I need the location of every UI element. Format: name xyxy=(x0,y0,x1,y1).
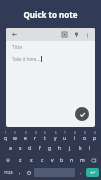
staticText: k xyxy=(79,145,82,152)
staticText: 3 xyxy=(25,131,27,135)
staticText: r xyxy=(34,135,37,142)
staticText: d xyxy=(28,145,32,152)
button[interactable]: 0 xyxy=(90,130,100,142)
button[interactable]: s xyxy=(15,142,25,154)
button[interactable]: g xyxy=(45,142,55,154)
button[interactable]: l xyxy=(85,142,95,154)
staticText: z xyxy=(19,157,22,164)
staticText: . xyxy=(80,169,82,176)
staticText: j xyxy=(69,145,71,152)
staticText: 7 xyxy=(64,131,66,135)
staticText: b xyxy=(60,157,64,164)
staticText: 9 xyxy=(84,131,86,135)
staticText: Quick to note xyxy=(23,9,78,20)
staticText: 8 xyxy=(74,131,76,135)
button[interactable]: 3 xyxy=(20,130,30,142)
button[interactable]: Emoji xyxy=(24,166,33,179)
button[interactable]: Comma xyxy=(16,166,24,179)
staticText: q xyxy=(4,135,8,142)
button[interactable]: Save xyxy=(60,30,69,39)
button[interactable]: More options xyxy=(83,31,91,39)
button[interactable]: d xyxy=(25,142,35,154)
staticText: y xyxy=(54,135,57,142)
button[interactable]: z xyxy=(15,154,26,166)
button[interactable]: 2 xyxy=(10,130,20,142)
staticText: ?123 xyxy=(4,170,13,175)
button[interactable]: 7 xyxy=(60,130,70,142)
staticText: Title xyxy=(12,44,22,51)
staticText: l xyxy=(89,145,91,152)
staticText: c xyxy=(41,157,44,164)
staticText: o xyxy=(83,135,87,142)
staticText: s xyxy=(19,145,22,152)
staticText: n xyxy=(70,157,74,164)
staticText: 5 xyxy=(44,131,46,135)
button[interactable]: a xyxy=(5,142,15,154)
staticText: h xyxy=(58,145,62,152)
button[interactable]: 4 xyxy=(30,130,40,142)
staticText: g xyxy=(48,145,52,152)
button[interactable]: k xyxy=(75,142,85,154)
staticText: 2 xyxy=(14,131,16,135)
staticText: i xyxy=(74,135,76,142)
staticText: 0 xyxy=(94,131,96,135)
button[interactable]: 1 xyxy=(1,130,10,142)
button[interactable]: 6 xyxy=(50,130,60,142)
staticText: Take it here... xyxy=(12,56,40,62)
staticText: u xyxy=(63,135,67,142)
button[interactable]: Pin xyxy=(72,30,81,39)
button[interactable]: 9 xyxy=(80,130,90,142)
staticText: 1 xyxy=(5,131,7,135)
staticText: f xyxy=(39,145,41,152)
button[interactable]: ?123 xyxy=(1,166,16,179)
button[interactable]: v xyxy=(47,154,57,166)
staticText: e xyxy=(24,135,27,142)
button[interactable]: n xyxy=(67,154,77,166)
button[interactable]: h xyxy=(55,142,65,154)
button[interactable]: Period xyxy=(76,166,85,179)
button[interactable]: b xyxy=(57,154,67,166)
button[interactable]: Backspace xyxy=(87,154,100,166)
staticText: t xyxy=(44,135,46,142)
staticText: w xyxy=(13,135,17,142)
button[interactable]: Save note xyxy=(75,107,89,121)
staticText: x xyxy=(30,157,33,164)
button[interactable]: f xyxy=(35,142,45,154)
button[interactable]: m xyxy=(77,154,87,166)
button[interactable]: Back xyxy=(10,30,19,39)
staticText: m xyxy=(80,157,85,164)
button[interactable]: x xyxy=(26,154,37,166)
button[interactable]: c xyxy=(37,154,47,166)
staticText: 6 xyxy=(55,131,57,135)
button[interactable]: Shift xyxy=(1,154,15,166)
button[interactable]: j xyxy=(65,142,75,154)
button[interactable]: 5 xyxy=(40,130,50,142)
staticText: 4 xyxy=(35,131,37,135)
staticText: , xyxy=(19,169,21,176)
staticText: v xyxy=(51,157,54,164)
button[interactable]: Enter xyxy=(86,168,99,177)
button[interactable]: 8 xyxy=(70,130,80,142)
staticText: a xyxy=(9,145,12,152)
staticText: p xyxy=(93,135,97,142)
